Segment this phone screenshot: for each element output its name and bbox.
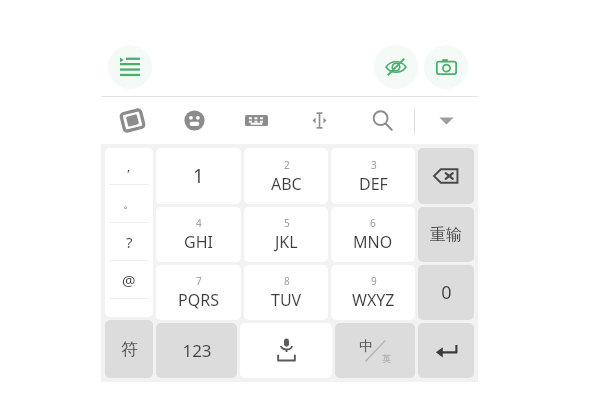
staticText: 重输 xyxy=(430,225,462,245)
staticText: PQRS xyxy=(178,289,219,311)
staticText: 8 xyxy=(284,274,290,288)
button[interactable]: 123 xyxy=(156,323,237,378)
staticText: 0 xyxy=(441,280,452,305)
button[interactable]: 符 xyxy=(105,320,153,378)
button[interactable]: Transcript list xyxy=(108,45,152,89)
staticText: @ xyxy=(122,270,136,290)
button[interactable]: Hide keyboard xyxy=(415,97,478,144)
staticText: WXYZ xyxy=(352,289,395,311)
button[interactable]: 2 ABC xyxy=(244,148,328,204)
staticText: ? xyxy=(126,232,133,252)
button[interactable]: 重输 xyxy=(418,207,474,262)
button[interactable]: Enter xyxy=(418,323,474,378)
button[interactable]: Backspace xyxy=(418,148,474,204)
staticText: ABC xyxy=(271,173,302,195)
staticText: 1 xyxy=(193,163,204,189)
button[interactable]: 3 DEF xyxy=(331,148,415,204)
staticText: JKL xyxy=(275,231,298,253)
staticText: 。 xyxy=(123,196,135,211)
staticText: 英 xyxy=(382,353,391,364)
button[interactable]: 9 WXYZ xyxy=(331,265,415,320)
staticText: 5 xyxy=(284,216,290,230)
button[interactable]: 0 xyxy=(418,265,474,320)
button[interactable]: 6 MNO xyxy=(331,207,415,262)
button[interactable]: Hide xyxy=(374,45,418,89)
button[interactable]: Emoji xyxy=(163,97,225,144)
button[interactable]: 5 JKL xyxy=(244,207,328,262)
button[interactable]: Symbols xyxy=(105,148,153,317)
staticText: 123 xyxy=(182,339,212,362)
staticText: 4 xyxy=(196,216,202,230)
button[interactable]: 1 xyxy=(156,148,241,204)
button[interactable]: Camera xyxy=(424,45,468,89)
staticText: DEF xyxy=(359,173,388,195)
button[interactable]: Keyboard layout xyxy=(225,97,288,144)
staticText: , xyxy=(127,158,131,174)
staticText: 3 xyxy=(371,158,377,172)
button[interactable]: Space xyxy=(240,323,332,378)
staticText: TUV xyxy=(271,289,302,311)
staticText: 9 xyxy=(371,274,377,288)
button[interactable]: 4 GHI xyxy=(156,207,241,262)
button[interactable]: 8 TUV xyxy=(244,265,328,320)
button[interactable]: Move cursor xyxy=(288,97,351,144)
staticText: 中 xyxy=(359,338,373,356)
staticText: 符 xyxy=(121,339,138,360)
staticText: GHI xyxy=(184,231,213,253)
button[interactable]: Search xyxy=(351,97,414,144)
button[interactable]: 7 PQRS xyxy=(156,265,241,320)
button[interactable]: Sogou input xyxy=(101,97,163,144)
staticText: 7 xyxy=(196,274,202,288)
button[interactable]: Chinese English toggle xyxy=(335,323,415,378)
staticText: MNO xyxy=(353,231,393,253)
staticText: 6 xyxy=(370,216,376,230)
staticText: 2 xyxy=(284,158,290,172)
